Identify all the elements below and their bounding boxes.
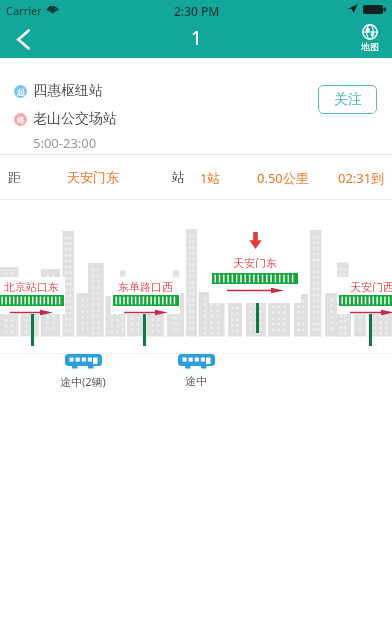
staticText: 东单路口西 [118, 280, 173, 294]
staticText: 2:30 PM [174, 3, 220, 19]
staticText: 天安门东 [233, 256, 277, 270]
staticText: 地图 [361, 41, 379, 52]
staticText: 起 [17, 87, 25, 97]
staticText: 老山公交场站 [33, 110, 117, 128]
staticText: 1 [191, 25, 202, 51]
staticText: 天安门西 [350, 280, 392, 294]
staticText: 四惠枢纽站 [33, 82, 103, 100]
staticText: 关注 [334, 91, 362, 109]
button[interactable]: 天安门西 [337, 277, 392, 314]
button[interactable]: Map [348, 20, 392, 58]
staticText: 1站 [200, 169, 221, 187]
staticText: 北京站口东 [4, 280, 59, 294]
staticText: 站 [172, 169, 185, 185]
button[interactable]: Back [0, 20, 46, 58]
staticText: Carrier [6, 3, 42, 18]
button[interactable]: 关注 [318, 85, 377, 114]
button[interactable]: 东单路口西 [111, 277, 180, 314]
staticText: 距 [8, 169, 21, 185]
staticText: 02:31到 [338, 169, 385, 187]
button[interactable]: 北京站口东 [0, 277, 65, 314]
staticText: 0.50公里 [257, 169, 309, 187]
staticText: 终 [17, 115, 25, 125]
staticText: 途中(2辆) [60, 374, 106, 389]
staticText: 天安门东 [67, 169, 119, 185]
staticText: 5:00-23:00 [33, 134, 97, 152]
button[interactable]: 天安门东 [209, 252, 301, 303]
staticText: 途中 [185, 374, 207, 388]
